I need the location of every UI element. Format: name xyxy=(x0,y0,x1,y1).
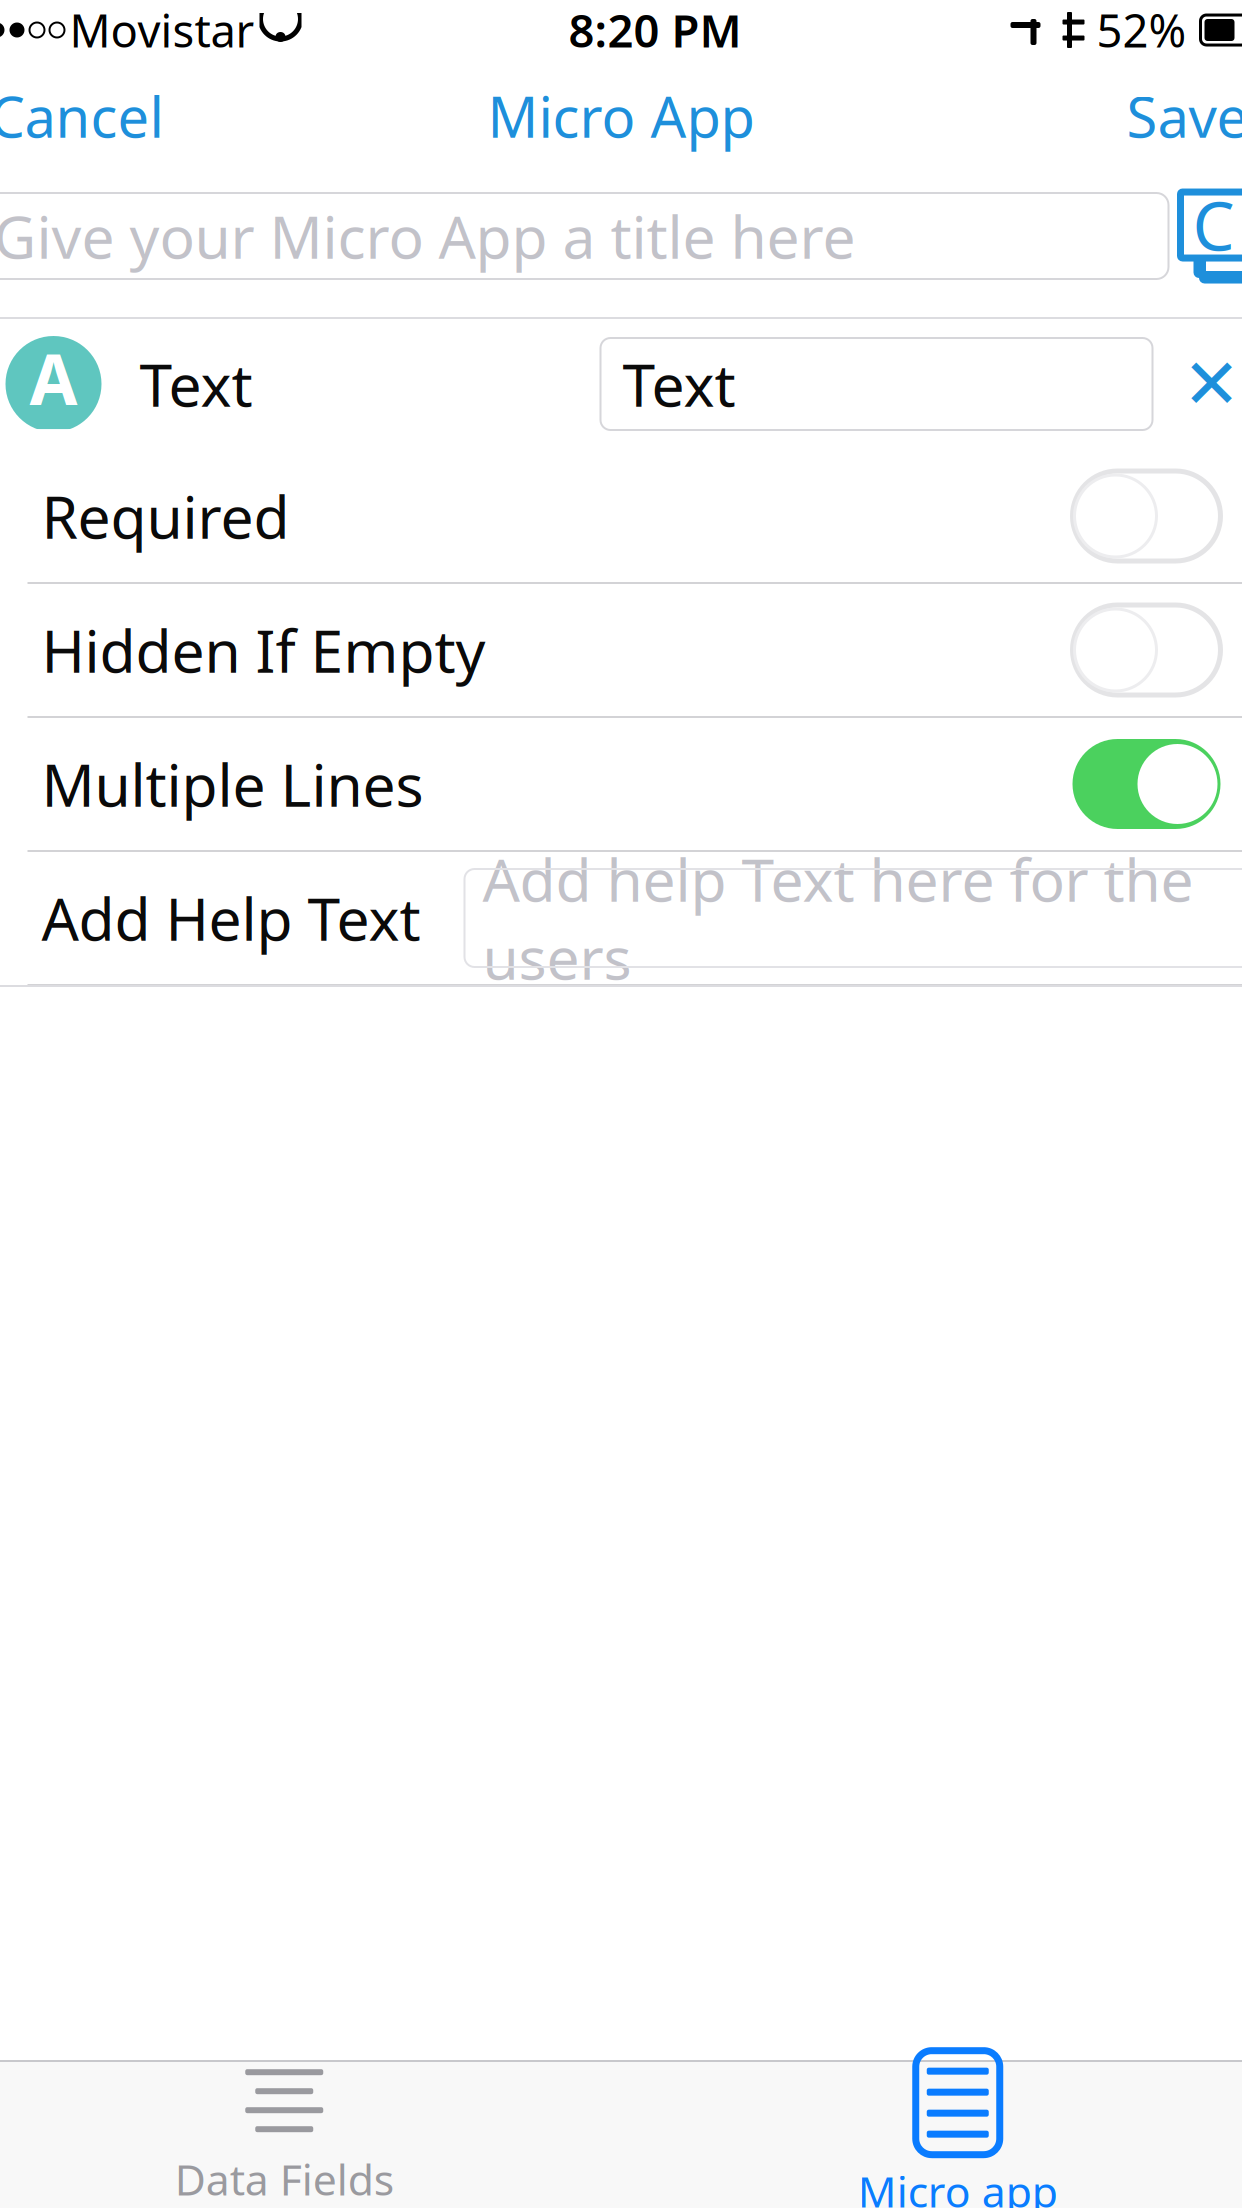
staticText: Multiple Lines xyxy=(41,745,423,823)
staticText: Movistar xyxy=(69,0,254,60)
button[interactable]: Templates xyxy=(1168,190,1242,282)
staticText: 8:20 PM xyxy=(568,0,741,60)
button[interactable]: Text xyxy=(600,338,1152,430)
button[interactable]: Micro App xyxy=(475,65,766,167)
staticText: Hidden If Empty xyxy=(41,611,485,689)
staticText: Add help Text here for the users xyxy=(482,840,1193,996)
button[interactable]: Data Fields xyxy=(0,2063,621,2207)
staticText: Text xyxy=(622,345,735,423)
button[interactable]: Give your Micro App a title here xyxy=(0,193,1168,279)
staticText: 52% xyxy=(1096,0,1186,60)
button[interactable]: Add help Text here for the users xyxy=(464,869,1242,967)
button[interactable]: Save xyxy=(1114,65,1242,167)
staticText: Micro App xyxy=(487,79,754,153)
staticText: C xyxy=(1192,181,1234,269)
button[interactable]: Toggle on xyxy=(1072,739,1220,829)
button[interactable]: Cancel xyxy=(0,65,175,167)
button[interactable]: Toggle off xyxy=(1072,605,1220,695)
staticText: Text xyxy=(139,345,252,423)
staticText: Give your Micro App a title here xyxy=(0,197,855,275)
button[interactable]: Remove field xyxy=(1166,339,1242,429)
staticText: Add Help Text xyxy=(41,879,420,957)
staticText: Micro app xyxy=(858,2163,1058,2208)
staticText: A xyxy=(29,332,77,424)
button[interactable]: Micro app xyxy=(621,2063,1242,2207)
staticText: Save xyxy=(1126,79,1242,153)
staticText: Required xyxy=(41,477,289,555)
button[interactable]: Toggle off xyxy=(1072,471,1220,561)
staticText: Cancel xyxy=(0,79,163,153)
staticText: Data Fields xyxy=(175,2151,394,2207)
staticText: ✕ xyxy=(1182,345,1240,423)
